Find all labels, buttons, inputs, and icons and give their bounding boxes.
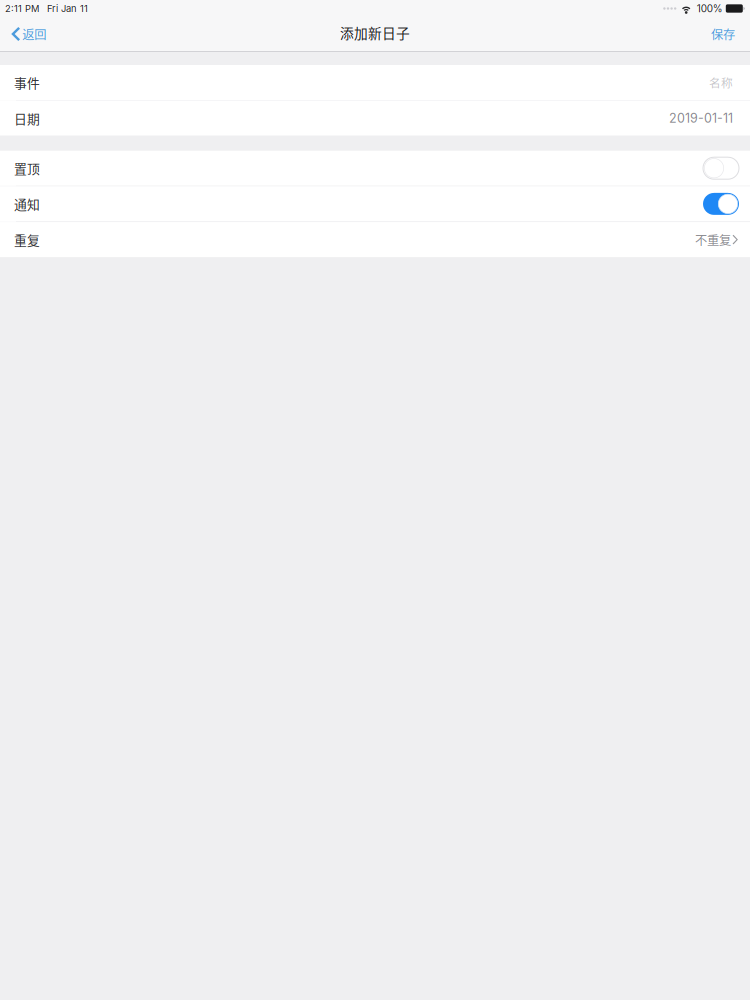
staticText: 返回	[22, 25, 46, 43]
staticText: 置顶	[14, 159, 40, 177]
button[interactable]: 重复	[0, 222, 750, 257]
staticText: 重复	[14, 230, 40, 249]
staticText: 日期	[14, 109, 40, 127]
staticText: 2019-01-11	[669, 111, 733, 126]
button[interactable]: 事件	[0, 65, 750, 100]
staticText: 通知	[14, 195, 40, 213]
button[interactable]: 通知	[0, 186, 750, 221]
staticText: 名称	[709, 74, 733, 91]
staticText: 保存	[711, 25, 735, 43]
staticText: 不重复	[695, 231, 731, 248]
staticText: 2:11 PM	[5, 3, 39, 14]
staticText: 100%	[697, 2, 723, 15]
staticText: Fri Jan 11	[47, 3, 88, 14]
button[interactable]: 日期	[0, 101, 750, 136]
staticText: 添加新日子	[340, 23, 410, 42]
button[interactable]: 返回	[0, 17, 56, 51]
staticText: 事件	[14, 73, 40, 92]
button[interactable]: 保存	[699, 17, 750, 51]
button[interactable]: 置顶	[0, 151, 750, 186]
